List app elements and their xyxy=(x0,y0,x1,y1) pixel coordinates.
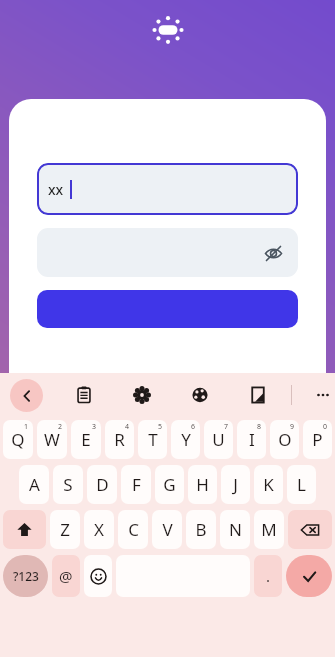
staticText: 0 xyxy=(323,422,328,432)
button[interactable]: Y xyxy=(171,420,200,459)
button[interactable]: P xyxy=(303,420,332,459)
button[interactable]: L xyxy=(287,465,316,504)
button[interactable]: U xyxy=(204,420,233,459)
button[interactable]: S xyxy=(53,465,83,504)
staticText: . xyxy=(266,566,271,586)
staticText: C xyxy=(128,518,139,541)
staticText: B xyxy=(195,518,207,541)
staticText: Q xyxy=(11,428,25,451)
staticText: X xyxy=(94,518,104,541)
staticText: N xyxy=(229,518,242,541)
button[interactable]: N xyxy=(220,510,250,549)
button[interactable]: H xyxy=(188,465,217,504)
staticText: O xyxy=(278,428,292,451)
button[interactable]: @ xyxy=(52,555,80,597)
button[interactable]: Show password xyxy=(37,228,298,277)
staticText: 6 xyxy=(191,422,196,432)
button[interactable]: E xyxy=(71,420,101,459)
staticText: G xyxy=(163,473,176,496)
button[interactable]: Z xyxy=(50,510,80,549)
staticText: @ xyxy=(59,566,73,586)
button[interactable]: Resize keyboard xyxy=(243,380,273,410)
button[interactable]: Back xyxy=(10,379,43,412)
button[interactable]: Enter xyxy=(286,555,332,597)
staticText: 4 xyxy=(125,422,130,432)
staticText: 3 xyxy=(92,422,97,432)
button[interactable]: B xyxy=(186,510,216,549)
staticText: S xyxy=(63,473,73,496)
staticText: L xyxy=(297,473,306,496)
staticText: I xyxy=(249,428,255,451)
button[interactable]: X xyxy=(84,510,114,549)
staticText: 1 xyxy=(24,422,29,432)
staticText: H xyxy=(196,473,209,496)
button[interactable]: Q xyxy=(3,420,33,459)
button[interactable]: F xyxy=(121,465,151,504)
button[interactable]: Show password xyxy=(256,236,290,270)
button[interactable]: R xyxy=(105,420,134,459)
staticText: P xyxy=(312,428,323,451)
staticText: E xyxy=(81,428,91,451)
staticText: U xyxy=(212,428,225,451)
button[interactable]: . xyxy=(254,555,282,597)
button[interactable]: C xyxy=(118,510,148,549)
staticText: ?123 xyxy=(13,568,39,584)
staticText: D xyxy=(96,473,109,496)
staticText: 5 xyxy=(158,422,163,432)
button[interactable]: xx xyxy=(37,163,298,215)
button[interactable]: Shift xyxy=(3,510,46,549)
staticText: 7 xyxy=(224,422,229,432)
button[interactable]: T xyxy=(138,420,167,459)
button[interactable]: Theme xyxy=(185,380,215,410)
staticText: R xyxy=(114,428,125,451)
button[interactable]: V xyxy=(152,510,182,549)
staticText: 9 xyxy=(290,422,295,432)
staticText: xx xyxy=(48,180,64,199)
staticText: V xyxy=(162,518,173,541)
button[interactable]: M xyxy=(254,510,284,549)
button[interactable]: More options xyxy=(310,380,335,410)
button[interactable]: Clipboard xyxy=(69,380,99,410)
button[interactable]: ?123 xyxy=(3,555,48,597)
staticText: F xyxy=(132,473,141,496)
button[interactable]: Backspace xyxy=(288,510,332,549)
staticText: A xyxy=(29,473,40,496)
staticText: K xyxy=(263,473,274,496)
staticText: W xyxy=(44,428,60,451)
staticText: M xyxy=(261,518,277,541)
staticText: 2 xyxy=(58,422,63,432)
button[interactable]: A xyxy=(19,465,49,504)
button[interactable]: I xyxy=(237,420,266,459)
staticText: Z xyxy=(60,518,70,541)
staticText: 8 xyxy=(257,422,262,432)
button[interactable]: Emoji xyxy=(84,555,112,597)
staticText: J xyxy=(233,473,238,496)
button[interactable]: K xyxy=(254,465,283,504)
button[interactable]: D xyxy=(87,465,117,504)
button[interactable]: G xyxy=(155,465,184,504)
button[interactable]: Settings xyxy=(127,380,157,410)
button[interactable]: W xyxy=(37,420,67,459)
staticText: T xyxy=(148,428,158,451)
button[interactable]: Submit xyxy=(37,290,298,328)
button[interactable]: J xyxy=(221,465,250,504)
button[interactable]: O xyxy=(270,420,299,459)
staticText: Y xyxy=(181,428,191,451)
